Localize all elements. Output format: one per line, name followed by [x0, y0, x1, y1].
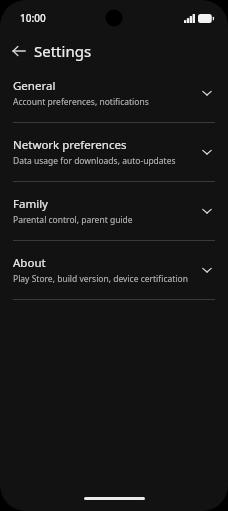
staticText: Parental control, parent guide — [13, 214, 133, 226]
button[interactable]: About — [0, 241, 228, 299]
staticText: Account preferences, notifications — [13, 96, 149, 108]
button[interactable]: General — [0, 66, 228, 122]
staticText: Play Store, build version, device certif… — [13, 273, 188, 285]
staticText: About — [13, 255, 46, 271]
staticText: General — [13, 78, 56, 94]
button[interactable]: Back — [7, 39, 31, 63]
staticText: Network preferences — [13, 137, 127, 153]
staticText: 10:00 — [20, 11, 46, 25]
staticText: Family — [13, 196, 48, 212]
staticText: Settings — [34, 41, 92, 61]
button[interactable]: Network preferences — [0, 123, 228, 181]
button[interactable]: Family — [0, 182, 228, 240]
staticText: Data usage for downloads, auto-updates — [13, 155, 176, 167]
